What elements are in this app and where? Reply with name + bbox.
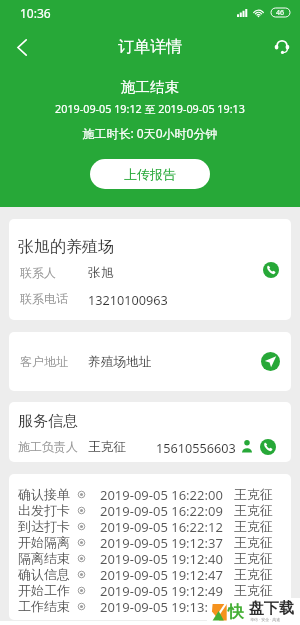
button[interactable]: 上传报告: [90, 159, 210, 189]
staticText: 10:36: [20, 5, 51, 21]
staticText: 张旭的养殖场: [18, 237, 114, 257]
staticText: 联系人: [20, 265, 56, 280]
staticText: 确认信息: [18, 566, 70, 582]
staticText: 46: [276, 8, 285, 17]
staticText: 出发打卡: [18, 502, 70, 518]
staticText: 客户地址: [20, 354, 68, 369]
staticText: 服务信息: [18, 412, 78, 431]
staticText: 王克征: [234, 518, 273, 534]
staticText: 2019-09-05 19:12:37: [100, 534, 223, 550]
staticText: 盘下载: [249, 599, 294, 618]
button[interactable]: 返回: [0, 25, 44, 69]
staticText: 华信 · 安全 · 高速: [250, 617, 281, 622]
staticText: 2019-09-05 19:12 至 2019-09-05 19:13: [0, 101, 300, 116]
staticText: 施工负责人: [18, 439, 78, 454]
staticText: 养殖场地址: [88, 354, 152, 370]
button[interactable]: 拨打电话: [260, 439, 276, 455]
staticText: 2019-09-05 16:22:12: [100, 518, 223, 534]
button[interactable]: 拨打电话: [263, 262, 279, 278]
staticText: 上传报告: [124, 166, 176, 182]
staticText: 王克征: [234, 502, 273, 518]
staticText: 隔离结束: [18, 550, 70, 566]
staticText: 15610556603: [156, 439, 236, 456]
staticText: 王克征: [234, 486, 273, 502]
staticText: 13210100963: [88, 291, 168, 308]
staticText: 订单详情: [118, 37, 182, 57]
staticText: 王克征: [234, 598, 273, 614]
staticText: 开始隔离: [18, 534, 70, 550]
staticText: 2019-09-05 19:13:18: [100, 598, 223, 614]
staticText: 快: [228, 602, 244, 622]
staticText: 王克征: [234, 550, 273, 566]
staticText: 工作结束: [18, 598, 70, 614]
staticText: 王克征: [234, 534, 273, 550]
staticText: 到达打卡: [18, 518, 70, 534]
staticText: 张旭: [88, 265, 114, 281]
staticText: 确认接单: [18, 486, 70, 502]
staticText: 2019-09-05 19:12:49: [100, 582, 223, 598]
staticText: 2019-09-05 16:22:09: [100, 502, 223, 518]
staticText: 联系电话: [20, 291, 68, 306]
staticText: 2019-09-05 16:22:00: [100, 486, 223, 502]
staticText: 2019-09-05 19:12:40: [100, 550, 223, 566]
button[interactable]: 联系人: [241, 439, 253, 453]
staticText: 王克征: [234, 582, 273, 598]
staticText: 开始工作: [18, 582, 70, 598]
button[interactable]: 导航: [261, 352, 280, 371]
staticText: 王克征: [88, 439, 127, 455]
staticText: 王克征: [234, 566, 273, 582]
button[interactable]: 客服: [262, 26, 300, 66]
staticText: 施工时长: 0天0小时0分钟: [0, 125, 300, 141]
staticText: 施工结束: [0, 78, 300, 96]
staticText: 2019-09-05 19:12:47: [100, 566, 223, 582]
